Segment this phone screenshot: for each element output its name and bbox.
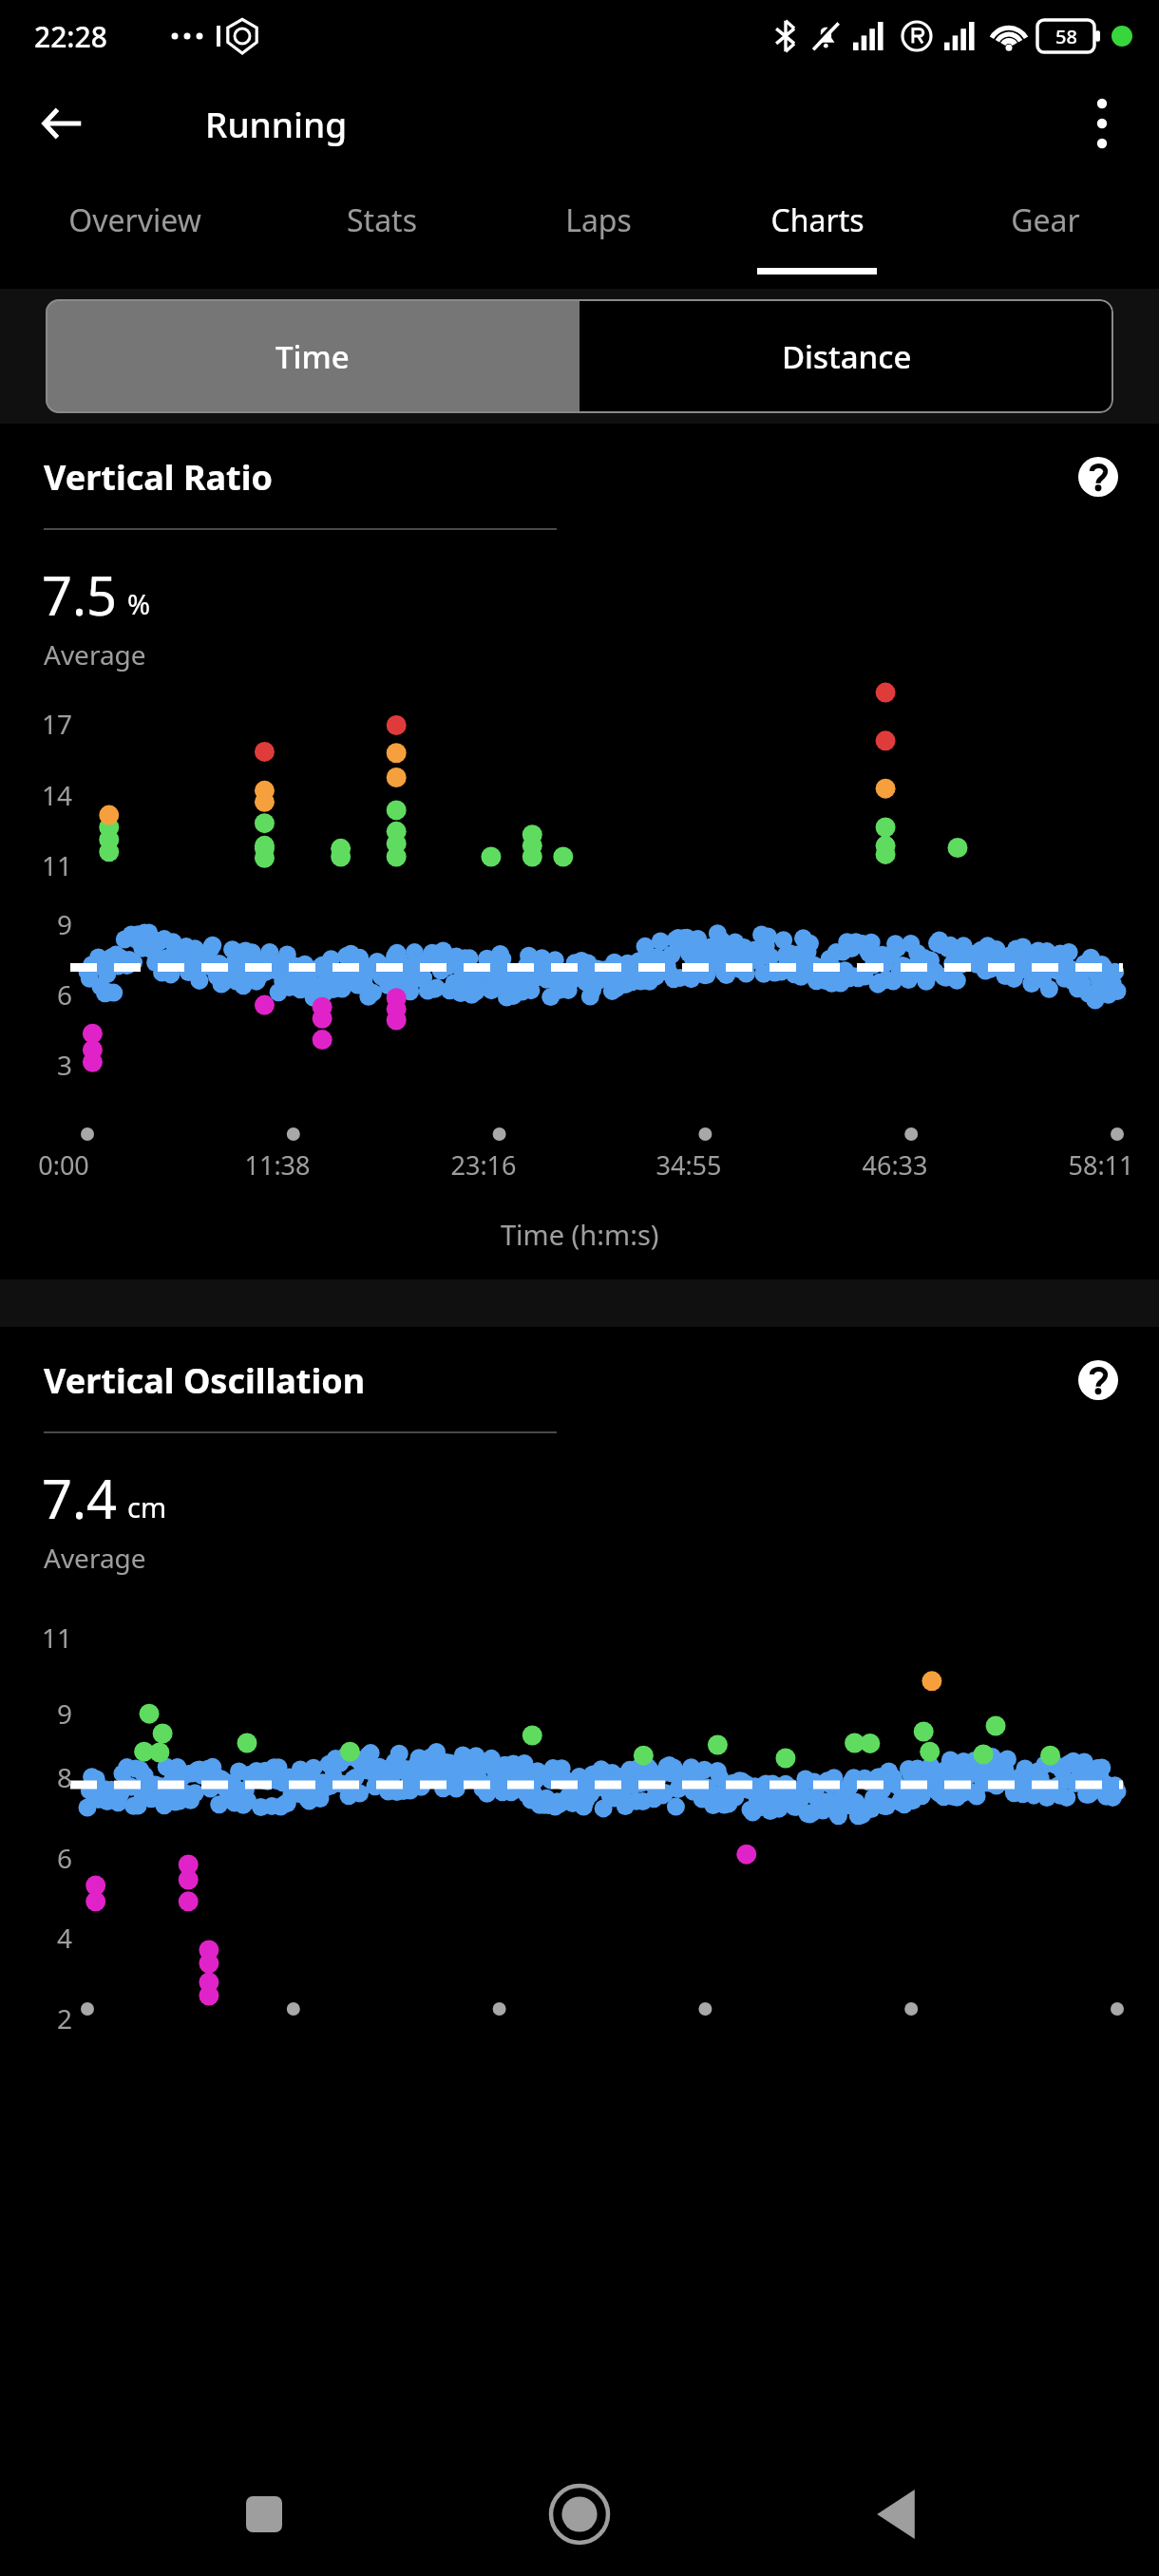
staticText: Running [205, 100, 348, 147]
staticText: Distance [782, 335, 912, 378]
staticText: Laps [565, 199, 632, 241]
staticText: 6 [0, 976, 72, 1013]
staticText: 9 [0, 1695, 72, 1732]
staticText: Overview [68, 199, 201, 241]
button[interactable]: Help [1072, 1354, 1125, 1407]
button[interactable]: Charts [703, 175, 931, 289]
staticText: 58 [1055, 24, 1077, 49]
staticText: 2 [0, 2000, 72, 2036]
staticText: 58:11 [1068, 1147, 1134, 1178]
staticText: 6 [0, 1840, 72, 1876]
staticText: Time (h:m:s) [501, 1216, 659, 1253]
staticText: cm [127, 1488, 167, 1525]
staticText: 0:00 [38, 1147, 89, 1178]
button[interactable]: More options [1064, 85, 1140, 161]
staticText: 14 [0, 777, 72, 813]
button[interactable]: Help [1072, 450, 1125, 503]
staticText: 9 [0, 906, 72, 942]
button[interactable]: Recent apps [212, 2462, 316, 2567]
staticText: 11 [0, 1619, 72, 1656]
staticText: 11:38 [244, 1147, 311, 1178]
button[interactable]: Overview [0, 175, 270, 289]
staticText: Time [275, 335, 350, 378]
staticText: 46:33 [862, 1147, 928, 1178]
staticText: 17 [0, 706, 72, 742]
button[interactable]: Back [844, 2462, 948, 2567]
staticText: 8 [0, 1759, 72, 1795]
staticText: 7.4 [42, 1462, 118, 1534]
button[interactable]: Laps [493, 175, 703, 289]
button[interactable]: Back [27, 87, 99, 160]
button[interactable]: Time [46, 299, 579, 413]
staticText: Average [44, 636, 146, 672]
staticText: 34:55 [655, 1147, 722, 1178]
staticText: Vertical Ratio [44, 454, 273, 501]
staticText: Gear [1011, 199, 1080, 241]
staticText: % [127, 585, 151, 622]
staticText: 7.5 [42, 559, 118, 631]
button[interactable]: Gear [931, 175, 1159, 289]
staticText: Vertical Oscillation [44, 1357, 366, 1404]
staticText: Average [44, 1540, 146, 1576]
staticText: 22:28 [34, 17, 107, 56]
staticText: Stats [347, 199, 417, 241]
staticText: 4 [0, 1920, 72, 1956]
staticText: 23:16 [450, 1147, 517, 1178]
button[interactable]: Distance [579, 299, 1113, 413]
staticText: 11 [0, 847, 72, 883]
button[interactable]: Home [527, 2462, 632, 2567]
staticText: 3 [0, 1047, 72, 1083]
staticText: Charts [770, 199, 864, 241]
button[interactable]: Stats [270, 175, 493, 289]
